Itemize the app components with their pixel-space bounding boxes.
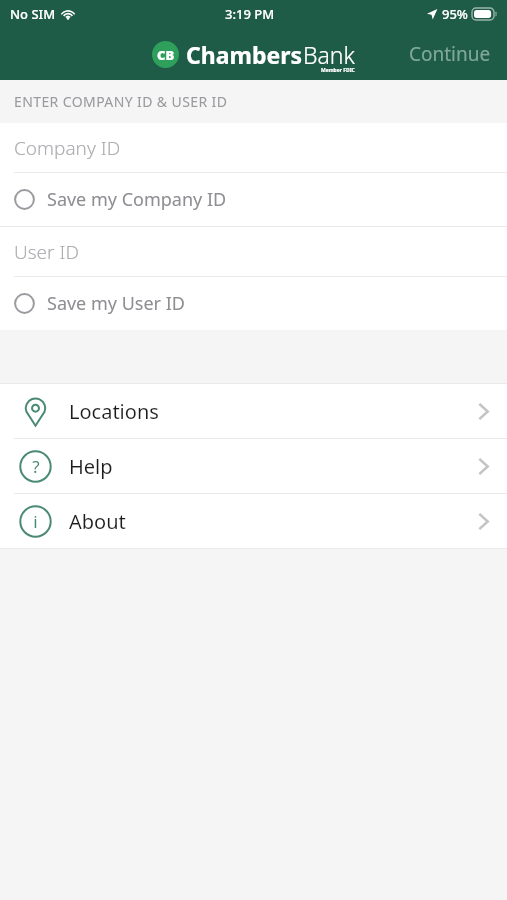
staticText: Continue — [409, 41, 491, 67]
button[interactable]: ? — [0, 439, 507, 493]
staticText: Save my User ID — [47, 291, 185, 316]
staticText: ENTER COMPANY ID & USER ID — [14, 92, 228, 111]
staticText: i — [33, 510, 38, 533]
staticText: About — [69, 508, 126, 535]
staticText: Chambers — [186, 39, 303, 70]
button[interactable]: Company ID — [0, 123, 507, 172]
button[interactable]: Continue — [393, 31, 507, 77]
button[interactable]: Save my Company ID — [0, 173, 507, 226]
staticText: Save my Company ID — [47, 187, 227, 212]
staticText: 95% — [442, 5, 468, 23]
staticText: User ID — [14, 239, 79, 265]
button[interactable]: Locations — [0, 384, 507, 438]
staticText: CB — [157, 46, 175, 64]
button[interactable]: User ID — [0, 227, 507, 276]
staticText: ? — [32, 455, 40, 478]
button[interactable]: i — [0, 494, 507, 548]
staticText: Company ID — [14, 135, 121, 161]
staticText: 3:19 PM — [225, 5, 275, 23]
staticText: Member FDIC — [321, 67, 355, 74]
button[interactable]: Save my User ID — [0, 277, 507, 330]
staticText: Locations — [69, 398, 159, 425]
staticText: No SIM — [10, 5, 56, 23]
staticText: Help — [69, 453, 113, 480]
staticText: Bank — [303, 39, 355, 70]
